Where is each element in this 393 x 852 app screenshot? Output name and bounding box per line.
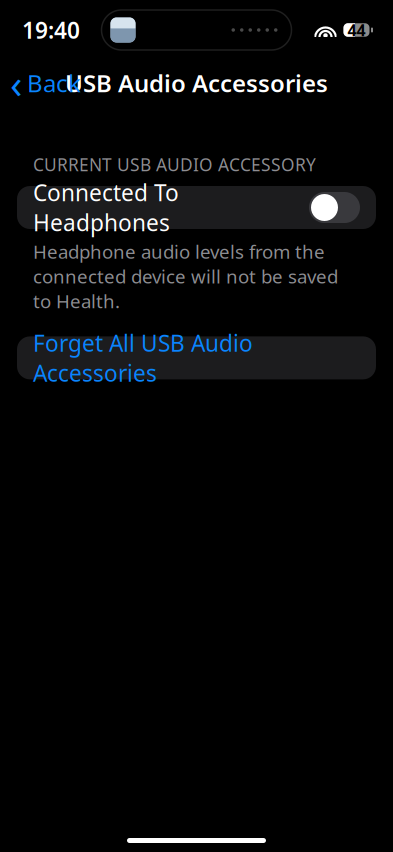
staticText: USB Audio Accessories xyxy=(65,67,328,99)
button[interactable]: Forget All USB Audio Accessories xyxy=(17,336,376,379)
staticText: Headphone audio levels from the connecte… xyxy=(33,239,338,313)
staticText: 19:40 xyxy=(22,15,80,45)
staticText: Connected To Headphones xyxy=(33,177,179,238)
staticText: Back xyxy=(27,67,81,99)
staticText: ‹ xyxy=(10,56,22,109)
staticText: CURRENT USB AUDIO ACCESSORY xyxy=(33,153,316,176)
staticText: 44 xyxy=(347,19,365,41)
staticText: Forget All USB Audio Accessories xyxy=(33,328,253,388)
button[interactable]: Connected To Headphones xyxy=(17,186,376,229)
button[interactable]: ‹ xyxy=(0,50,81,115)
